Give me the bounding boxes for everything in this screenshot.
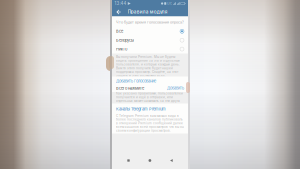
staticText: Никто: [116, 47, 127, 51]
button[interactable]: Back: [114, 7, 123, 16]
button[interactable]: Все: [112, 27, 188, 36]
staticText: Всего нажмите: [116, 86, 144, 91]
button[interactable]: Добавить голосование: [112, 76, 188, 83]
staticText: Добавить голосование: [116, 79, 156, 83]
button[interactable]: Никто: [112, 45, 188, 53]
button[interactable]: Белорусы: [112, 36, 188, 45]
staticText: Все: [116, 29, 123, 34]
button[interactable]: Back: [167, 155, 176, 165]
staticText: LTE: [167, 2, 172, 5]
staticText: Добавить: [167, 86, 184, 90]
staticText: Вы получили Premium. Мы не будем видеть …: [116, 55, 180, 77]
button[interactable]: Home: [145, 156, 155, 165]
staticText: С Telegram Premium вам можно вида в боле…: [116, 114, 184, 132]
staticText: Правила модуля: [128, 9, 168, 14]
staticText: Каналы Telegram Premium: [116, 107, 166, 111]
staticText: Что будет время голосования опроса?: [116, 20, 184, 24]
button[interactable]: Всего нажмите: [112, 85, 188, 91]
staticText: 13:44: [115, 1, 127, 6]
button[interactable]: Recent apps: [124, 156, 133, 165]
staticText: Белорусы: [116, 38, 134, 43]
staticText: Как указано правилами, пользователей пол…: [116, 91, 183, 106]
